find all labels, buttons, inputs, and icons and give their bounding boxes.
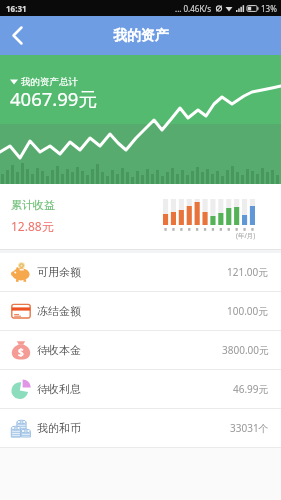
button[interactable]: 我的和币 (0, 409, 281, 448)
staticText: 4067.99元 (10, 86, 97, 111)
button[interactable]: 冻结金额 (0, 292, 281, 331)
staticText: ... 0.46K/s (175, 3, 212, 14)
staticText: $ (18, 345, 24, 359)
staticText: 可用余额 (37, 265, 81, 279)
staticText: (年/月) (236, 231, 256, 240)
staticText: 待收本金 (37, 343, 81, 357)
button[interactable]: 可用余额 (0, 253, 281, 292)
staticText: 13% (261, 3, 277, 14)
button[interactable]: 累计收益 (0, 184, 281, 249)
button[interactable]: $ (0, 331, 281, 370)
button[interactable]: 待收利息 (0, 370, 281, 409)
staticText: 我的和币 (37, 421, 81, 435)
button[interactable] (0, 16, 34, 55)
staticText: 46.99元 (233, 382, 269, 396)
staticText: 100.00元 (227, 304, 269, 318)
staticText: 我的资产总计 (21, 76, 78, 88)
staticText: 累计收益 (11, 198, 55, 212)
staticText: 16:31 (6, 3, 27, 14)
staticText: 121.00元 (227, 265, 269, 279)
staticText: 33031个 (230, 421, 269, 435)
staticText: 3800.00元 (222, 343, 269, 357)
staticText: 待收利息 (37, 382, 81, 396)
staticText: 我的资产 (113, 27, 169, 45)
staticText: 冻结金额 (37, 304, 81, 318)
staticText: 12.88元 (11, 218, 54, 234)
